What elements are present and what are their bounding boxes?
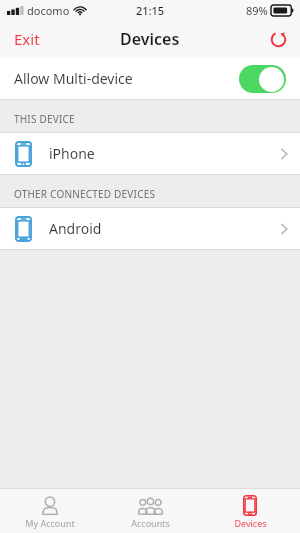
staticText: Allow Multi-device: [14, 69, 133, 88]
staticText: Exit: [14, 29, 40, 49]
staticText: iPhone: [49, 144, 95, 163]
button[interactable]: Exit: [0, 21, 54, 57]
button[interactable]: Allow Multi-device toggle: [239, 65, 286, 93]
button[interactable]: Devices: [200, 489, 300, 533]
staticText: 21:15: [136, 3, 165, 18]
button[interactable]: Android: [0, 208, 300, 249]
button[interactable]: My Account: [0, 489, 100, 533]
button[interactable]: Refresh: [265, 26, 291, 52]
staticText: Android: [49, 219, 102, 238]
button[interactable]: iPhone: [0, 133, 300, 174]
button[interactable]: Allow Multi-device: [0, 58, 300, 99]
staticText: 89%: [246, 3, 268, 18]
staticText: docomo: [27, 3, 70, 18]
staticText: OTHER CONNECTED DEVICES: [14, 187, 156, 201]
staticText: Devices: [234, 517, 267, 529]
staticText: Devices: [120, 28, 180, 50]
button[interactable]: Accounts: [100, 489, 200, 533]
staticText: THIS DEVICE: [14, 112, 75, 126]
staticText: Accounts: [131, 517, 170, 529]
staticText: My Account: [25, 517, 75, 529]
